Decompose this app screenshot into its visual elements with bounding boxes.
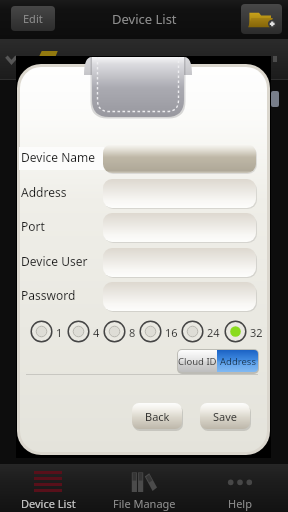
button[interactable]: Back <box>132 403 182 429</box>
button[interactable] <box>67 320 90 343</box>
staticText: Edit <box>23 11 43 26</box>
staticText: Help <box>228 496 252 511</box>
staticText: File Manage <box>113 496 176 511</box>
staticText: Back <box>145 409 170 424</box>
staticText: Port <box>21 218 45 234</box>
button[interactable] <box>181 320 204 343</box>
button[interactable]: Add device <box>241 4 282 34</box>
button[interactable]: Cloud ID <box>178 350 217 372</box>
staticText: 1 <box>56 325 63 340</box>
button[interactable] <box>30 320 53 343</box>
button[interactable]: File Manage <box>96 464 192 512</box>
button[interactable]: Address <box>217 350 258 372</box>
staticText: 4 <box>93 325 100 340</box>
button[interactable] <box>103 248 256 277</box>
staticText: Save <box>213 409 238 424</box>
staticText: 24 <box>207 325 220 340</box>
staticText: Device User <box>21 253 88 269</box>
button[interactable]: Help <box>192 464 288 512</box>
staticText: Address <box>220 355 256 368</box>
button[interactable]: Device List <box>0 464 96 512</box>
button[interactable] <box>103 320 126 343</box>
staticText: 16 <box>165 325 178 340</box>
button[interactable] <box>103 282 256 311</box>
staticText: 32 <box>250 325 263 340</box>
button[interactable] <box>103 144 256 173</box>
button[interactable]: Edit <box>11 6 55 31</box>
button[interactable]: Save <box>200 403 250 429</box>
button[interactable] <box>103 213 256 242</box>
button[interactable] <box>224 320 247 343</box>
staticText: Device Name <box>21 149 95 165</box>
staticText: Device List <box>112 10 177 28</box>
staticText: Password <box>21 287 76 303</box>
staticText: Device List <box>21 496 76 511</box>
staticText: 8 <box>129 325 136 340</box>
staticText: Address <box>21 184 67 200</box>
button[interactable] <box>103 179 256 208</box>
staticText: Cloud ID <box>178 355 217 368</box>
button[interactable] <box>139 320 162 343</box>
